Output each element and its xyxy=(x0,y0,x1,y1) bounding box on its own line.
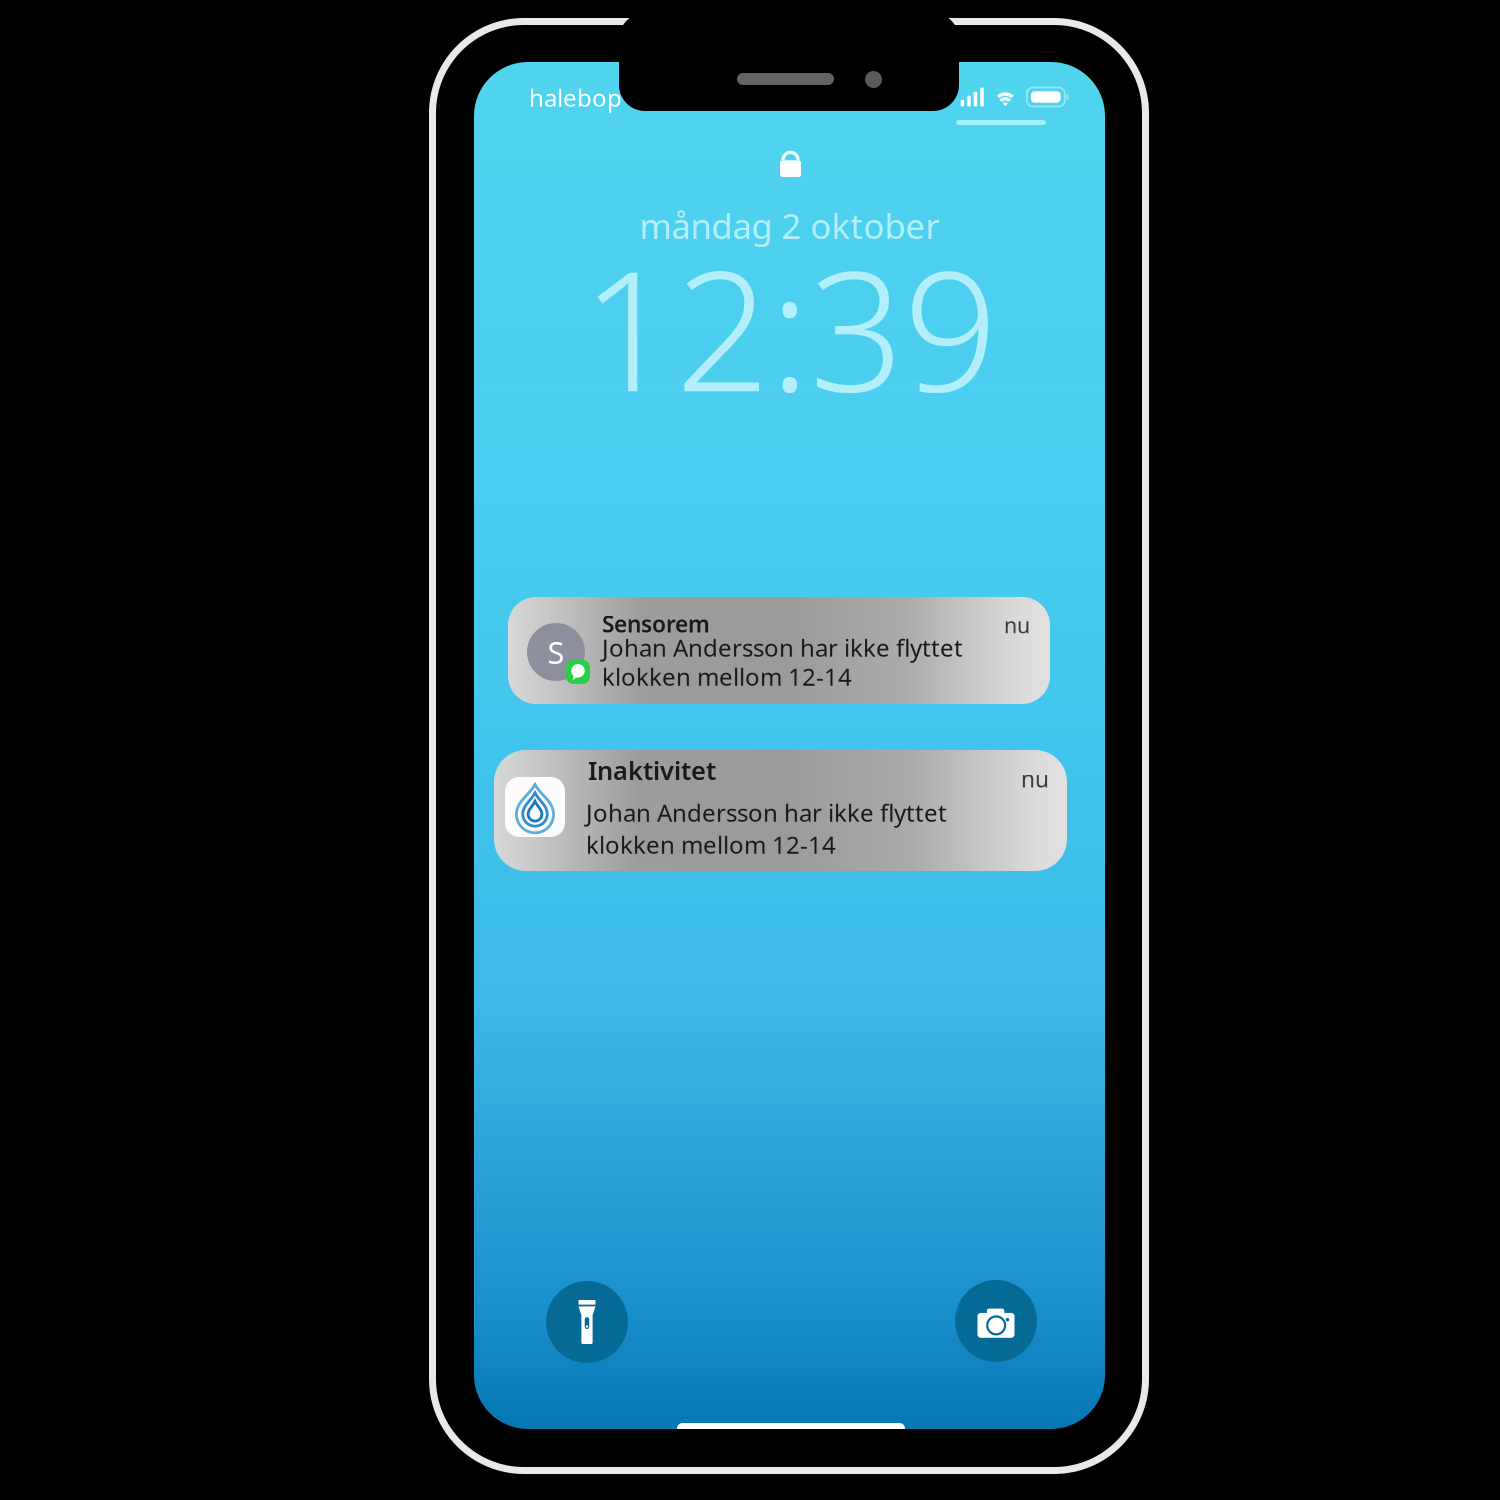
staticText: Johan Andersson har ikke flyttet xyxy=(586,797,947,828)
staticText: klokken mellom 12-14 xyxy=(602,661,852,692)
staticText: 12:39 xyxy=(581,217,997,437)
button[interactable]: S xyxy=(508,597,1050,704)
staticText: Sensorem xyxy=(602,609,710,639)
staticText: klokken mellom 12-14 xyxy=(586,829,836,860)
staticText: nu xyxy=(1004,611,1030,639)
button[interactable]: Flashlight xyxy=(546,1281,628,1363)
staticText: S xyxy=(547,632,564,672)
button[interactable]: Inaktivitet xyxy=(494,750,1067,871)
staticText: måndag 2 oktober xyxy=(639,202,939,248)
button[interactable]: Camera xyxy=(955,1280,1037,1362)
staticText: nu xyxy=(1021,764,1049,794)
staticText: halebop xyxy=(529,82,622,113)
staticText: Johan Andersson har ikke flyttet xyxy=(602,632,963,663)
staticText: Inaktivitet xyxy=(588,753,716,787)
